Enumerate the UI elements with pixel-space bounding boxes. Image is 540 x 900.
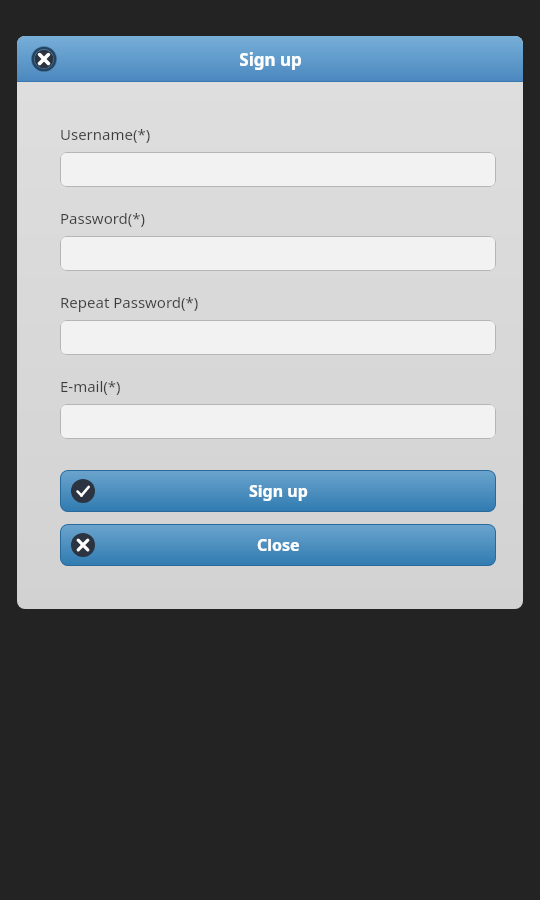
button[interactable]: Close dialog: [27, 42, 61, 76]
button[interactable]: [60, 236, 496, 271]
staticText: Sign up: [239, 48, 302, 71]
staticText: Password(*): [60, 208, 146, 228]
button[interactable]: [60, 320, 496, 355]
staticText: Repeat Password(*): [60, 292, 199, 312]
staticText: Sign up: [249, 480, 308, 502]
button[interactable]: Close: [60, 524, 496, 566]
button[interactable]: Sign up: [60, 470, 496, 512]
staticText: E-mail(*): [60, 376, 121, 396]
button[interactable]: [60, 404, 496, 439]
staticText: Username(*): [60, 124, 151, 144]
button[interactable]: [60, 152, 496, 187]
staticText: Close: [257, 534, 300, 556]
